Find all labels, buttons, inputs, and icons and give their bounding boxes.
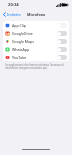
- staticText: Microfono: [27, 12, 46, 17]
- button[interactable]: Indietro: [0, 12, 25, 17]
- button[interactable]: App Clip: [3, 21, 69, 29]
- staticText: YouTube: [12, 55, 27, 60]
- button[interactable]: Attiva/disattiva: [57, 23, 67, 28]
- staticText: Le applicazioni che hanno richiesto l'ac…: [5, 63, 64, 70]
- button[interactable]: YouTube: [3, 53, 69, 61]
- staticText: Google Maps: [12, 39, 34, 44]
- staticText: App Clip: [12, 23, 26, 28]
- staticText: GoogleDrive: [12, 31, 33, 36]
- staticText: WhatsApp: [12, 47, 30, 52]
- button[interactable]: Attiva/disattiva: [57, 47, 67, 52]
- button[interactable]: Google Maps: [3, 37, 69, 45]
- button[interactable]: Attiva/disattiva: [57, 39, 67, 44]
- button[interactable]: WhatsApp: [3, 45, 69, 53]
- button[interactable]: Attiva/disattiva: [57, 31, 67, 36]
- button[interactable]: GoogleDrive: [3, 29, 69, 37]
- staticText: Indietro: [7, 12, 21, 17]
- button[interactable]: Attiva/disattiva: [57, 55, 67, 60]
- staticText: 20:34: [8, 2, 19, 8]
